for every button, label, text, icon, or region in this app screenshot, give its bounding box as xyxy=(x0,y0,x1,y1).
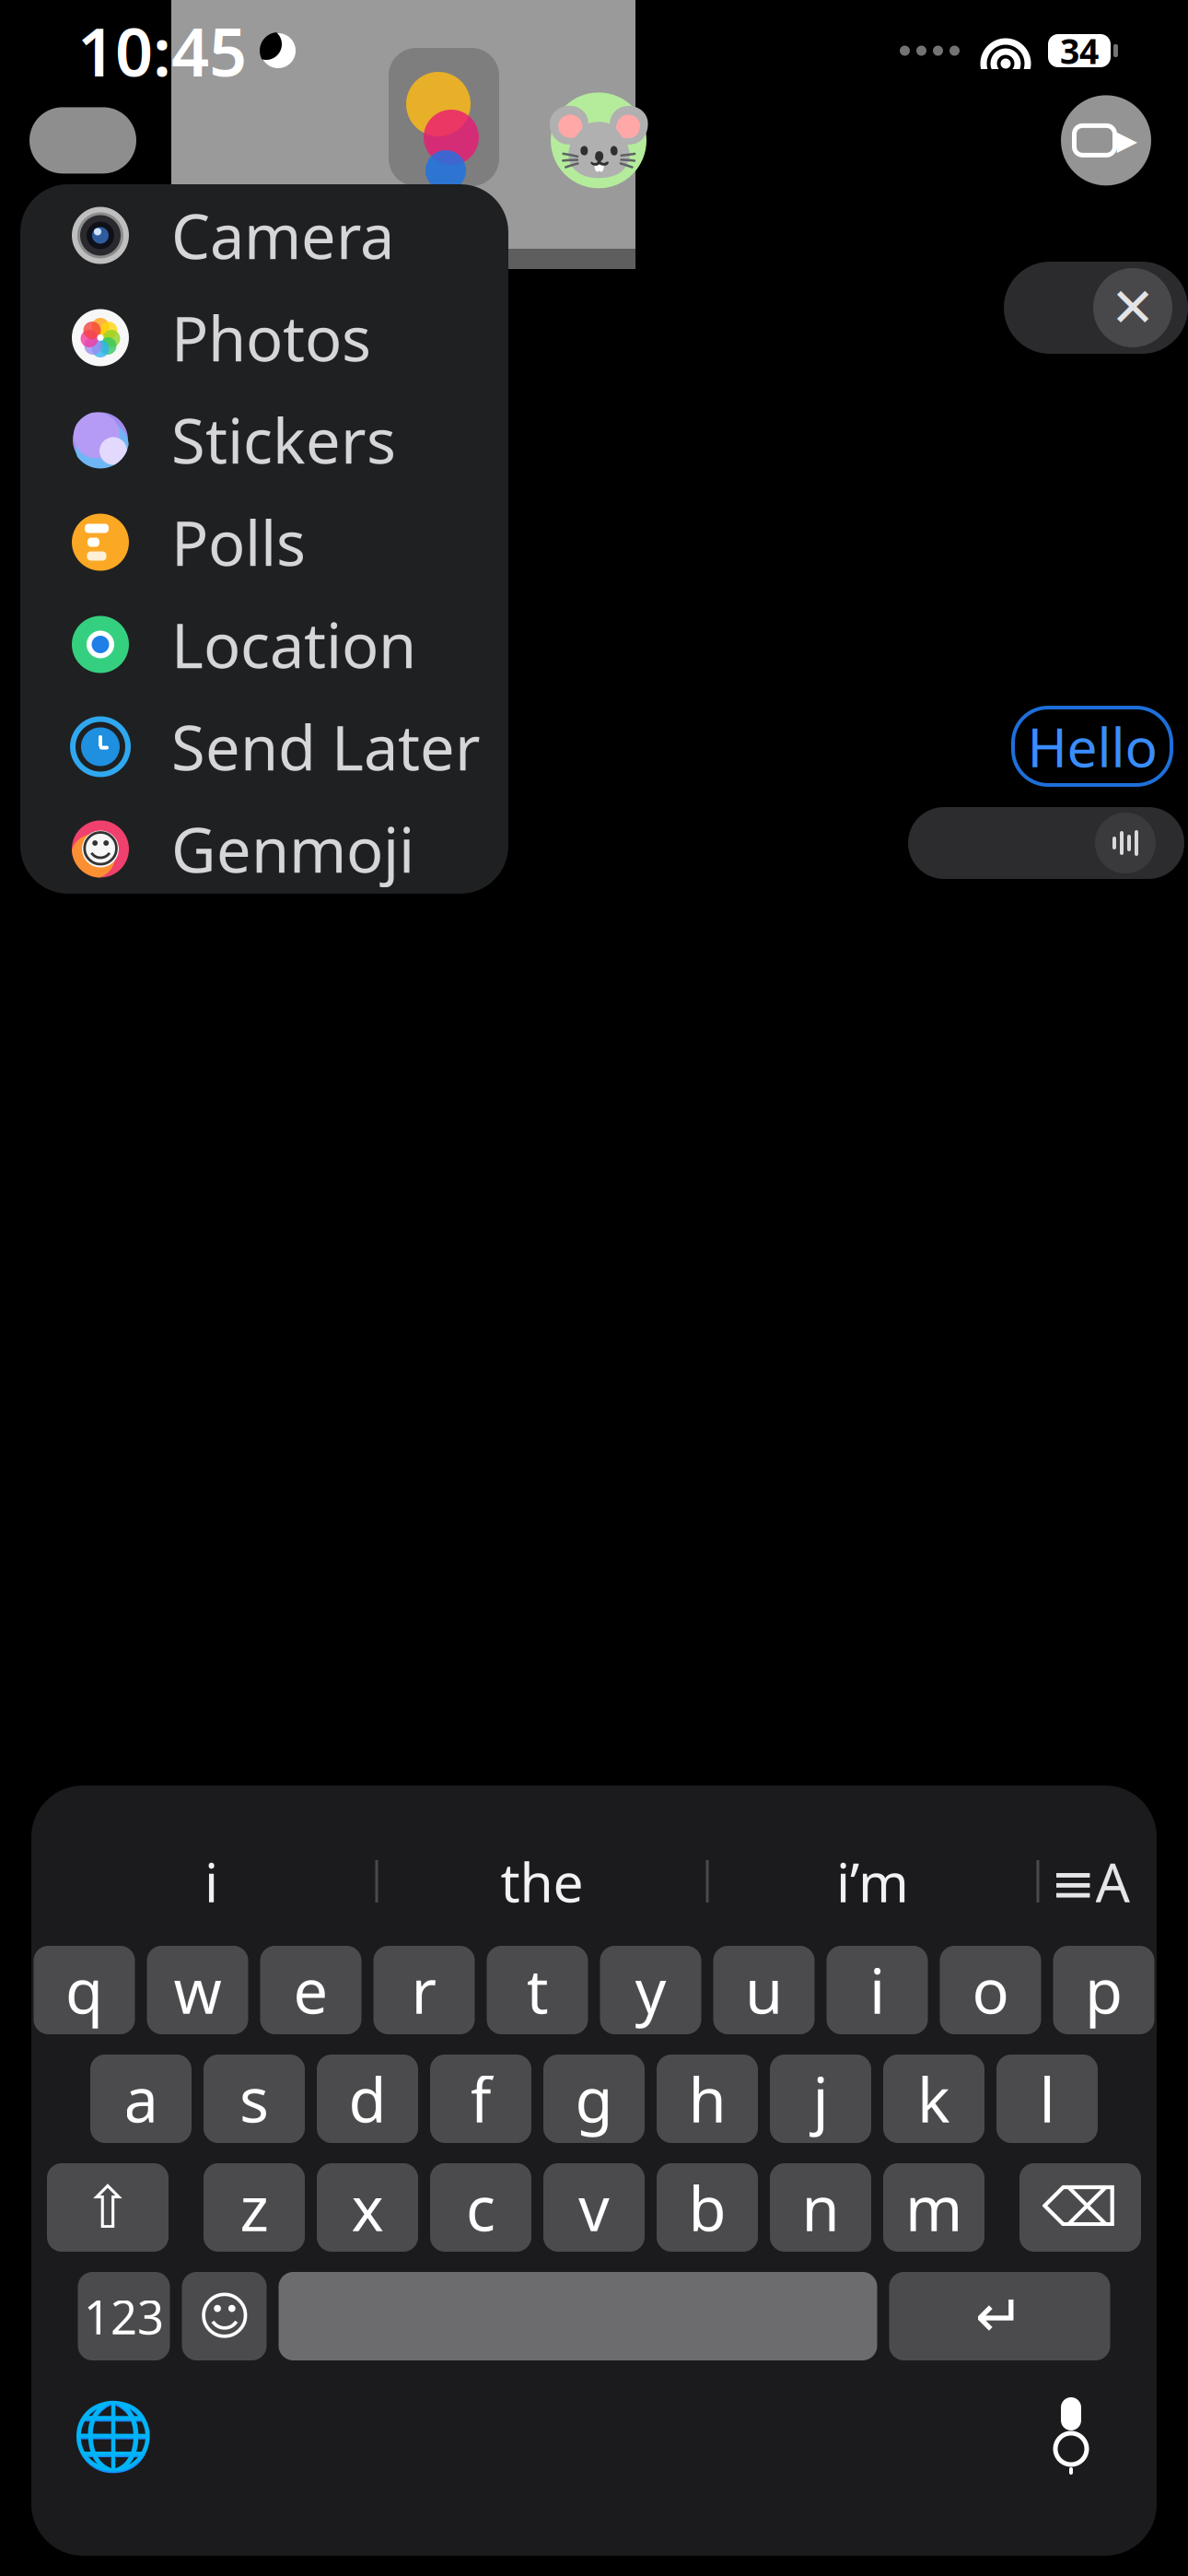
staticText: ▶ xyxy=(1117,125,1138,156)
button[interactable]: c xyxy=(430,2163,531,2252)
staticText: 🐭 xyxy=(542,88,655,192)
staticText: h xyxy=(688,2058,726,2139)
button[interactable]: i xyxy=(827,1946,928,2034)
button[interactable]: e xyxy=(260,1946,361,2034)
button[interactable]: h xyxy=(657,2055,758,2143)
button[interactable]: g xyxy=(543,2055,645,2143)
button[interactable]: r xyxy=(373,1946,475,2034)
staticText: i xyxy=(869,1949,885,2031)
staticText: q xyxy=(65,1949,103,2031)
button[interactable]: o xyxy=(940,1946,1041,2034)
staticText: j xyxy=(813,2058,828,2139)
staticText: y xyxy=(635,1949,666,2031)
staticText: Camera xyxy=(171,195,394,276)
button[interactable]: k xyxy=(883,2055,984,2143)
staticText: Send Later xyxy=(171,706,481,787)
staticText: u xyxy=(745,1949,783,2031)
button[interactable]: i xyxy=(47,1837,375,1926)
button[interactable]: v xyxy=(543,2163,645,2252)
staticText: g xyxy=(575,2058,613,2139)
button[interactable]: the xyxy=(378,1837,706,1926)
staticText: x xyxy=(351,2167,384,2248)
button[interactable]: z xyxy=(204,2163,305,2252)
button[interactable]: j xyxy=(770,2055,871,2143)
button[interactable]: Delete xyxy=(1019,2163,1141,2252)
staticText: t xyxy=(526,1949,548,2031)
staticText: Photos xyxy=(171,297,371,378)
staticText: ✕ xyxy=(1110,277,1155,338)
button[interactable]: Formatting xyxy=(1039,1837,1141,1926)
button[interactable]: l xyxy=(996,2055,1098,2143)
button[interactable]: a xyxy=(90,2055,192,2143)
staticText: 10:45 xyxy=(77,7,247,95)
button[interactable]: f xyxy=(430,2055,531,2143)
staticText: w xyxy=(174,1949,221,2031)
button[interactable]: Audio message xyxy=(1095,813,1156,873)
staticText: ☺ xyxy=(80,827,121,871)
staticText: z xyxy=(240,2167,268,2248)
button[interactable]: Return xyxy=(889,2272,1110,2360)
button[interactable]: Stickers xyxy=(20,389,508,491)
button[interactable]: d xyxy=(317,2055,418,2143)
staticText: Hello xyxy=(1027,710,1157,782)
button[interactable]: Back xyxy=(29,107,136,174)
staticText: ≡A xyxy=(1050,1845,1130,1917)
staticText: b xyxy=(688,2167,726,2248)
staticText: d xyxy=(349,2058,386,2139)
button[interactable]: Shift xyxy=(47,2163,169,2252)
button[interactable]: Emoji xyxy=(182,2272,267,2360)
button[interactable]: Send Later xyxy=(20,696,508,798)
staticText: f xyxy=(470,2058,491,2139)
staticText: the xyxy=(501,1845,583,1917)
button[interactable]: q xyxy=(34,1946,135,2034)
staticText: 34 xyxy=(1060,28,1099,74)
staticText: i’m xyxy=(836,1845,909,1917)
staticText: r xyxy=(411,1949,437,2031)
button[interactable]: Next keyboard xyxy=(72,2395,155,2477)
staticText: Stickers xyxy=(171,399,396,481)
staticText: k xyxy=(917,2058,950,2139)
staticText: ↵ xyxy=(975,2283,1025,2350)
button[interactable]: Polls xyxy=(20,491,508,593)
staticText: m xyxy=(905,2167,962,2248)
staticText: p xyxy=(1085,1949,1123,2031)
button[interactable]: Remove attachment xyxy=(1093,268,1172,347)
button[interactable]: y xyxy=(600,1946,701,2034)
staticText: c xyxy=(466,2167,495,2248)
staticText: Genmoji xyxy=(171,808,414,890)
staticText: s xyxy=(239,2058,269,2139)
staticText: Location xyxy=(171,604,416,685)
button[interactable]: ☺ xyxy=(20,798,508,900)
button[interactable]: FaceTime xyxy=(1061,95,1151,186)
button[interactable]: Location xyxy=(20,593,508,696)
staticText: o xyxy=(972,1949,1009,2031)
staticText: Polls xyxy=(171,501,306,583)
button[interactable]: b xyxy=(657,2163,758,2252)
button[interactable]: m xyxy=(883,2163,984,2252)
staticText: ⇧ xyxy=(83,2174,133,2241)
button[interactable]: Photos xyxy=(20,287,508,389)
staticText: v xyxy=(578,2167,610,2248)
staticText: ⌫ xyxy=(1042,2177,1118,2238)
button[interactable]: Camera xyxy=(20,184,508,287)
staticText: 123 xyxy=(84,2285,164,2347)
button[interactable]: i’m xyxy=(709,1837,1037,1926)
button[interactable]: Space xyxy=(279,2272,877,2360)
staticText: a xyxy=(124,2058,158,2139)
button[interactable]: u xyxy=(713,1946,815,2034)
button[interactable]: n xyxy=(770,2163,871,2252)
staticText: n xyxy=(802,2167,839,2248)
button[interactable]: Numbers xyxy=(78,2272,170,2360)
button[interactable]: w xyxy=(147,1946,248,2034)
button[interactable]: t xyxy=(487,1946,588,2034)
staticText: ☺ xyxy=(198,2287,251,2345)
staticText: l xyxy=(1039,2058,1055,2139)
button[interactable]: p xyxy=(1053,1946,1154,2034)
staticText: i xyxy=(204,1845,218,1917)
button[interactable]: Dictation xyxy=(1030,2392,1112,2480)
staticText: 🌐 xyxy=(72,2398,155,2474)
button[interactable]: s xyxy=(204,2055,305,2143)
staticText: e xyxy=(293,1949,328,2031)
button[interactable]: x xyxy=(317,2163,418,2252)
